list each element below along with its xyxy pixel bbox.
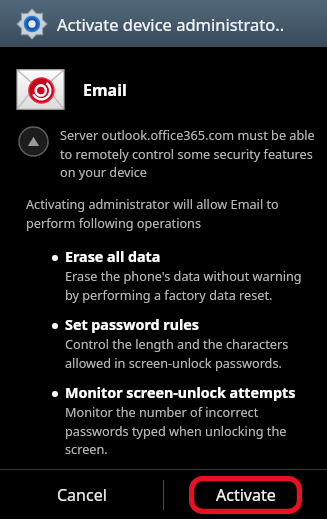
staticText: Erase the phone's data without warning b… (65, 267, 313, 303)
staticText: Activate (216, 484, 276, 506)
staticText: Control the length and the characters al… (65, 335, 313, 371)
staticText: Monitor screen-unlock attempts (65, 383, 296, 402)
staticText: Email (83, 79, 127, 101)
staticText: Set password rules (65, 315, 199, 334)
button[interactable]: Cancel (0, 470, 163, 519)
staticText: Server outlook.office365.com must be abl… (60, 126, 317, 180)
staticText: Activate device administrato.. (57, 13, 285, 35)
staticText: Erase all data (65, 247, 161, 266)
button[interactable]: Activate (164, 470, 327, 519)
staticText: Activating administrator will allow Emai… (26, 195, 311, 231)
staticText: Cancel (57, 484, 107, 506)
staticText: Monitor the number of incorrect password… (65, 403, 313, 457)
